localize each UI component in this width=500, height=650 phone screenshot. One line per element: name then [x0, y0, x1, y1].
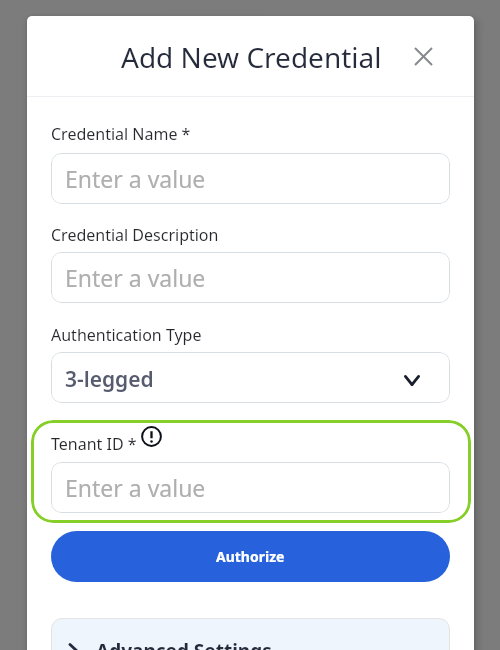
staticText: Enter a value — [65, 472, 206, 503]
button[interactable]: Enter a value — [51, 462, 450, 513]
staticText: 3-legged — [65, 365, 154, 394]
button[interactable]: Enter a value — [51, 153, 450, 204]
staticText: Enter a value — [65, 262, 206, 293]
button[interactable]: Close — [403, 36, 443, 76]
button[interactable]: 3-legged — [51, 352, 450, 403]
button[interactable]: Enter a value — [51, 252, 450, 303]
staticText: Credential Name * — [51, 123, 191, 145]
staticText: Add New Credential — [121, 38, 382, 76]
staticText: Credential Description — [51, 224, 219, 246]
staticText: Authorize — [216, 547, 285, 566]
staticText: Advanced Settings — [96, 638, 272, 650]
staticText: Enter a value — [65, 163, 206, 194]
staticText: Authentication Type — [51, 324, 202, 346]
staticText: Tenant ID * — [51, 433, 137, 455]
button[interactable]: Advanced Settings — [51, 618, 450, 650]
button[interactable]: Authorize — [51, 531, 450, 582]
